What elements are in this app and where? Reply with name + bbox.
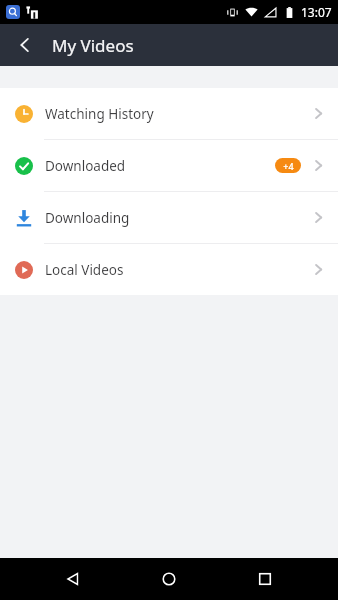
button[interactable]: Downloading — [0, 192, 338, 243]
button[interactable]: Back — [6, 26, 44, 64]
staticText: My Videos — [52, 34, 134, 57]
button[interactable]: Local Videos — [0, 244, 338, 295]
button[interactable]: Downloaded — [0, 140, 338, 191]
staticText: +4 — [283, 160, 294, 172]
staticText: Downloading — [45, 209, 130, 227]
button[interactable]: Recent apps — [242, 558, 288, 600]
button[interactable]: Home — [146, 558, 192, 600]
staticText: 13:07 — [301, 4, 332, 20]
button[interactable]: Watching History — [0, 88, 338, 139]
staticText: Watching History — [45, 105, 154, 123]
button[interactable]: Back — [50, 558, 96, 600]
staticText: Local Videos — [45, 261, 124, 279]
staticText: Downloaded — [45, 157, 126, 175]
